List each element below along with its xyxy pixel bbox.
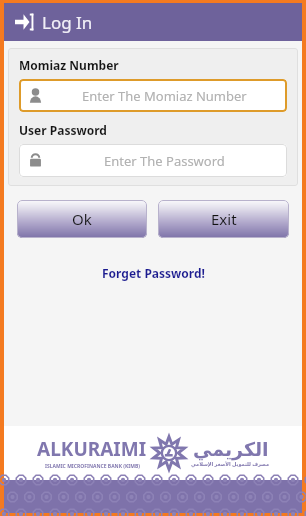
staticText: Enter The Momiaz Number: [82, 87, 247, 105]
staticText: ALKURAIMI: [37, 436, 147, 462]
button[interactable]: Momiaz Number: [19, 79, 287, 112]
staticText: الكريمي: [193, 438, 269, 460]
button[interactable]: Ok: [17, 200, 147, 238]
staticText: Exit: [211, 209, 237, 229]
button[interactable]: Exit: [158, 200, 289, 238]
staticText: Ok: [72, 209, 92, 229]
staticText: Momiaz Number: [19, 57, 119, 73]
button[interactable]: Log In: [4, 3, 302, 41]
staticText: مصرف للتمويل الأصغر الإسلامي: [191, 461, 270, 468]
staticText: ISLAMIC MICROFINANCE BANK (KIMB): [45, 463, 140, 470]
staticText: Forget Password!: [102, 265, 205, 281]
button[interactable]: User Password: [19, 144, 287, 177]
other: Log In: [13, 11, 35, 33]
button[interactable]: Forget Password!: [4, 262, 302, 284]
staticText: Log In: [42, 11, 93, 34]
staticText: Enter The Password: [104, 152, 225, 170]
staticText: User Password: [19, 122, 107, 138]
